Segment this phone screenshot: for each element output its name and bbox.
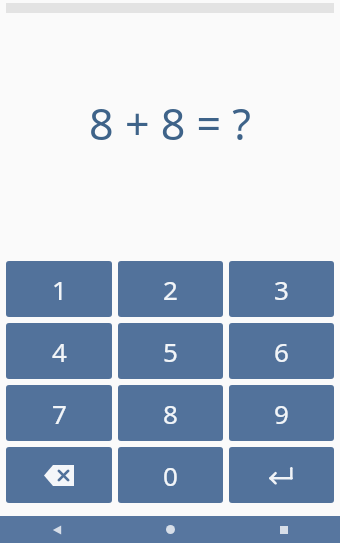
button[interactable]: 6 <box>229 323 334 379</box>
staticText: 2 <box>163 272 178 307</box>
button[interactable]: 8 <box>118 385 223 441</box>
staticText: 5 <box>163 334 178 369</box>
button[interactable]: 5 <box>118 323 223 379</box>
staticText: 3 <box>274 272 289 307</box>
staticText: 8 <box>163 396 178 431</box>
button[interactable]: 0 <box>118 447 223 503</box>
staticText: 6 <box>274 334 289 369</box>
button[interactable]: Backspace <box>6 447 112 503</box>
button[interactable]: 7 <box>6 385 112 441</box>
button[interactable]: Enter <box>229 447 334 503</box>
button[interactable]: 9 <box>229 385 334 441</box>
button[interactable]: Back <box>0 516 114 543</box>
staticText: 1 <box>52 272 67 307</box>
staticText: 9 <box>274 396 289 431</box>
button[interactable]: 4 <box>6 323 112 379</box>
button[interactable]: 1 <box>6 261 112 317</box>
staticText: 7 <box>52 396 67 431</box>
button[interactable]: Recents <box>227 516 340 543</box>
staticText: 0 <box>163 458 178 493</box>
button[interactable]: Home <box>114 516 227 543</box>
staticText: 8 + 8 = ? <box>0 94 340 153</box>
staticText: 4 <box>52 334 67 369</box>
button[interactable]: 2 <box>118 261 223 317</box>
button[interactable]: 3 <box>229 261 334 317</box>
